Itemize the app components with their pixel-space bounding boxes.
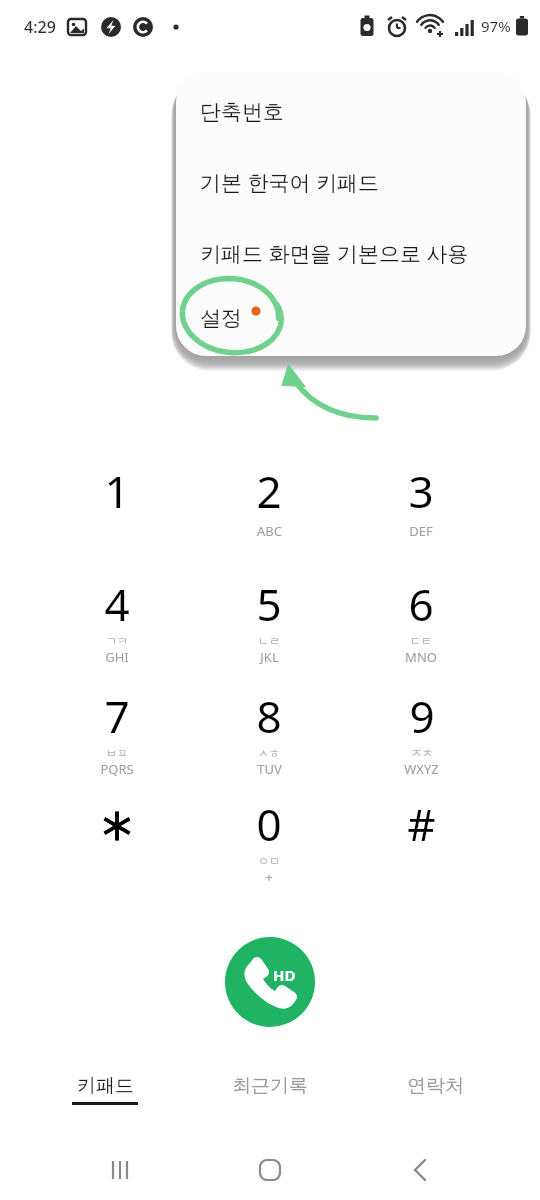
button[interactable]: # <box>348 794 494 902</box>
button[interactable]: 기본 한국어 키패드 <box>176 159 526 205</box>
button[interactable]: 연락처 <box>360 1060 510 1116</box>
staticText: 7 <box>104 686 130 746</box>
button[interactable]: 2 <box>196 461 342 569</box>
staticText: 단축번호 <box>200 99 284 125</box>
staticText: DEF <box>409 522 433 540</box>
staticText: 0 <box>256 794 282 854</box>
button[interactable]: 4 <box>44 574 190 682</box>
staticText: ㄴㄹ <box>258 634 280 648</box>
staticText: 4 <box>104 574 130 634</box>
staticText: 6 <box>408 574 434 634</box>
staticText: ㅈㅊ <box>411 746 433 760</box>
staticText: ㅂㅍ <box>106 746 128 760</box>
staticText: 5 <box>256 574 282 634</box>
staticText: 9 <box>409 686 435 746</box>
staticText: 4:29 <box>24 16 56 38</box>
button[interactable]: 3 <box>348 461 494 569</box>
staticText: 97% <box>481 16 511 36</box>
staticText: 최근기록 <box>232 1074 308 1098</box>
button[interactable]: Back <box>380 1146 460 1194</box>
staticText: 8 <box>256 686 282 746</box>
button[interactable]: 키패드 화면을 기본으로 사용 <box>176 230 526 276</box>
staticText: 설정 <box>200 305 242 331</box>
staticText: 1 <box>104 461 130 521</box>
staticText: 2 <box>256 461 282 521</box>
button[interactable]: 9 <box>348 686 494 794</box>
button[interactable]: Call <box>225 937 315 1027</box>
button[interactable]: 5 <box>196 574 342 682</box>
button[interactable]: 1 <box>44 461 190 569</box>
staticText: HD <box>273 965 296 985</box>
button[interactable]: 8 <box>196 686 342 794</box>
staticText: ABC <box>257 522 282 540</box>
staticText: ㅇㅁ <box>258 854 280 868</box>
staticText: WXYZ <box>404 760 439 778</box>
button[interactable]: 6 <box>348 574 494 682</box>
staticText: TUV <box>257 760 282 778</box>
staticText: ㄷㅌ <box>410 634 432 648</box>
staticText: + <box>265 868 273 886</box>
staticText: 기본 한국어 키패드 <box>200 168 379 197</box>
button[interactable]: 설정 <box>176 295 526 341</box>
staticText: 3 <box>408 461 434 521</box>
staticText: 키패드 화면을 기본으로 사용 <box>200 239 469 268</box>
staticText: MNO <box>405 648 437 666</box>
button[interactable]: Home <box>230 1146 310 1194</box>
button[interactable]: 최근기록 <box>195 1060 345 1116</box>
button[interactable] <box>44 794 190 902</box>
staticText: ㅅㅎ <box>258 746 280 760</box>
button[interactable]: Recents <box>80 1146 160 1194</box>
button[interactable]: 단축번호 <box>176 89 526 135</box>
staticText: JKL <box>260 648 279 666</box>
button[interactable]: 7 <box>44 686 190 794</box>
button[interactable]: 키패드 <box>30 1060 180 1116</box>
staticText: 연락처 <box>407 1074 464 1098</box>
staticText: GHI <box>105 648 129 666</box>
staticText: PQRS <box>100 760 134 778</box>
button[interactable]: 0 <box>196 794 342 902</box>
staticText: # <box>407 794 436 854</box>
staticText: 키패드 <box>77 1074 134 1098</box>
staticText: ㄱㅋ <box>106 634 128 648</box>
